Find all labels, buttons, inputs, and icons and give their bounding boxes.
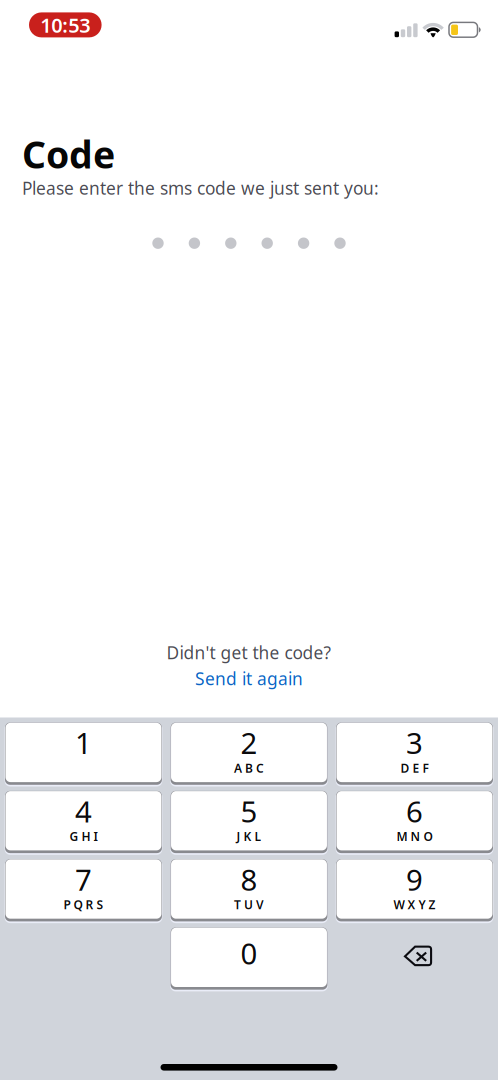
button[interactable]: 0 bbox=[170, 927, 328, 991]
button[interactable]: 6 bbox=[336, 791, 493, 855]
button[interactable]: Delete bbox=[336, 927, 493, 991]
staticText: 5 bbox=[240, 791, 257, 830]
button[interactable]: 4 bbox=[5, 791, 162, 855]
staticText: Code bbox=[22, 129, 115, 179]
staticText: Didn't get the code? bbox=[166, 641, 331, 664]
staticText: Please enter the sms code we just sent y… bbox=[22, 176, 379, 199]
staticText: 10:53 bbox=[40, 12, 90, 38]
button[interactable]: Send it again bbox=[195, 667, 303, 690]
staticText: 4 bbox=[75, 791, 92, 830]
staticText: 7 bbox=[75, 860, 92, 899]
staticText: J K L bbox=[236, 828, 261, 844]
button[interactable]: 5 bbox=[170, 791, 328, 855]
button[interactable]: 8 bbox=[170, 859, 328, 923]
staticText: Send it again bbox=[195, 667, 303, 690]
button[interactable]: 7 bbox=[5, 859, 162, 923]
staticText: T U V bbox=[234, 897, 264, 912]
staticText: W X Y Z bbox=[393, 897, 435, 912]
staticText: 9 bbox=[406, 860, 423, 899]
staticText: 0 bbox=[240, 934, 257, 973]
button[interactable]: 2 bbox=[170, 722, 328, 786]
staticText: 2 bbox=[240, 723, 257, 762]
button[interactable]: 1 bbox=[5, 722, 162, 786]
staticText: 1 bbox=[75, 723, 92, 762]
staticText: 6 bbox=[406, 791, 423, 830]
staticText: 3 bbox=[406, 723, 423, 762]
staticText: G H I bbox=[69, 828, 97, 844]
staticText: P Q R S bbox=[63, 897, 103, 912]
button[interactable]: 9 bbox=[336, 859, 493, 923]
staticText: 8 bbox=[240, 860, 257, 899]
button[interactable]: 3 bbox=[336, 722, 493, 786]
staticText: A B C bbox=[234, 760, 264, 776]
staticText: M N O bbox=[396, 828, 432, 844]
staticText: D E F bbox=[400, 760, 428, 776]
